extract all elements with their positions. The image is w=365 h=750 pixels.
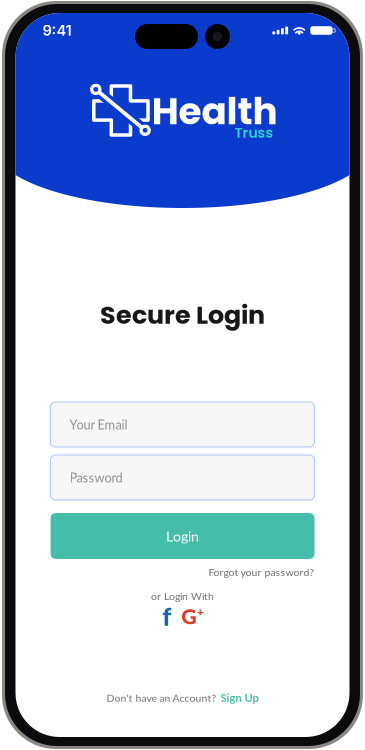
button[interactable]: Log in with Google	[181, 608, 204, 624]
staticText: or Login With	[151, 590, 214, 602]
button[interactable]: Login	[50, 513, 314, 559]
button[interactable]: Password	[50, 455, 314, 500]
staticText: Health	[151, 85, 277, 137]
staticText: +	[197, 604, 204, 619]
staticText: Sign Up	[220, 691, 258, 704]
staticText: 9:41	[42, 22, 71, 39]
staticText: Forgot your password?	[208, 566, 314, 578]
staticText: Login	[166, 528, 199, 544]
staticText: Don't have an Account?	[106, 691, 216, 704]
staticText: G	[181, 603, 196, 629]
button[interactable]: Sign Up	[220, 691, 258, 704]
staticText: f	[162, 601, 171, 631]
button[interactable]: Log in with Facebook	[161, 608, 172, 624]
staticText: Truss	[234, 123, 273, 143]
staticText: Secure Login	[100, 297, 265, 333]
button[interactable]: Your Email	[50, 402, 314, 447]
staticText: Your Email	[69, 417, 127, 432]
staticText: Password	[69, 470, 122, 485]
button[interactable]: Forgot your password?	[208, 566, 314, 578]
